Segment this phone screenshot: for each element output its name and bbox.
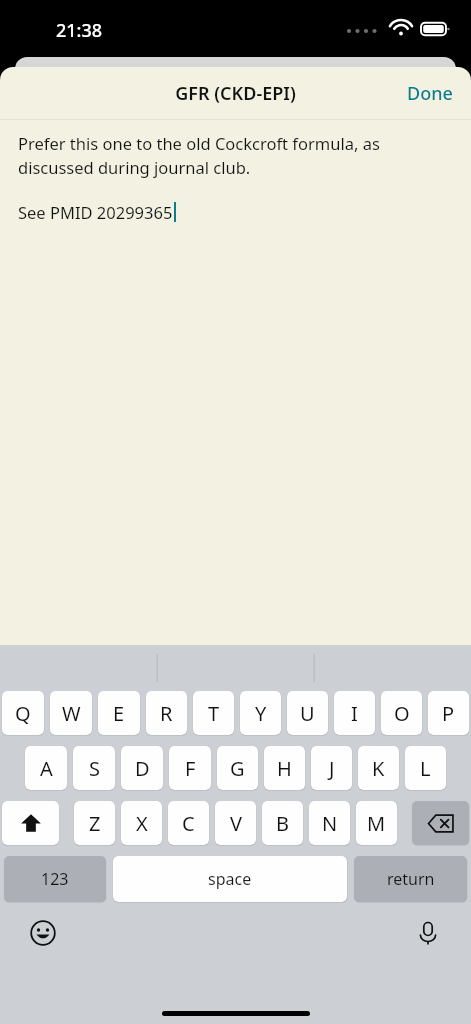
staticText: O: [394, 700, 410, 727]
button[interactable]: 123: [4, 856, 106, 902]
button[interactable]: F: [169, 746, 211, 790]
staticText: F: [185, 755, 196, 782]
staticText: Done: [407, 81, 453, 106]
button[interactable]: V: [215, 801, 256, 845]
button[interactable]: D: [121, 746, 163, 790]
button[interactable]: J: [311, 746, 352, 790]
staticText: N: [322, 810, 338, 837]
button[interactable]: Emoji keyboard: [24, 914, 62, 952]
staticText: S: [89, 755, 100, 782]
button[interactable]: P: [428, 691, 469, 735]
staticText: H: [277, 755, 292, 782]
button[interactable]: B: [262, 801, 303, 845]
staticText: L: [420, 755, 431, 782]
staticText: Q: [15, 700, 31, 727]
button[interactable]: S: [73, 746, 115, 790]
button[interactable]: Backspace: [412, 801, 469, 845]
staticText: V: [230, 810, 242, 837]
staticText: K: [372, 755, 385, 782]
staticText: Prefer this one to the old Cockcroft for…: [18, 132, 453, 179]
button[interactable]: H: [264, 746, 305, 790]
staticText: return: [387, 868, 435, 890]
staticText: I: [351, 700, 358, 727]
button[interactable]: G: [217, 746, 258, 790]
button[interactable]: return: [354, 856, 467, 902]
staticText: E: [113, 700, 125, 727]
button[interactable]: W: [50, 691, 92, 735]
staticText: B: [276, 810, 289, 837]
staticText: 21:38: [56, 18, 103, 43]
button[interactable]: N: [309, 801, 350, 845]
staticText: Z: [89, 810, 101, 837]
button[interactable]: K: [358, 746, 399, 790]
button[interactable]: Y: [240, 691, 281, 735]
staticText: T: [208, 700, 220, 727]
staticText: D: [135, 755, 150, 782]
staticText: C: [182, 810, 195, 837]
button[interactable]: C: [168, 801, 209, 845]
staticText: GFR (CKD-EPI): [175, 81, 296, 106]
button[interactable]: Dictation: [409, 914, 447, 952]
button[interactable]: A: [25, 746, 67, 790]
button[interactable]: I: [334, 691, 375, 735]
button[interactable]: U: [287, 691, 328, 735]
button[interactable]: Shift: [2, 801, 59, 845]
button[interactable]: X: [121, 801, 162, 845]
staticText: R: [160, 700, 173, 727]
staticText: 123: [41, 868, 69, 890]
staticText: X: [136, 810, 148, 837]
button[interactable]: T: [193, 691, 234, 735]
button[interactable]: R: [146, 691, 187, 735]
button[interactable]: space: [113, 856, 347, 902]
staticText: Y: [255, 700, 267, 727]
button[interactable]: Z: [74, 801, 115, 845]
button[interactable]: E: [98, 691, 140, 735]
button[interactable]: Q: [2, 691, 44, 735]
staticText: A: [40, 755, 53, 782]
staticText: G: [230, 755, 245, 782]
staticText: See PMID 20299365: [18, 201, 173, 223]
staticText: J: [329, 755, 335, 782]
staticText: M: [367, 810, 386, 837]
staticText: U: [300, 700, 315, 727]
button[interactable]: O: [381, 691, 422, 735]
staticText: P: [442, 700, 455, 727]
staticText: W: [62, 700, 81, 727]
button[interactable]: L: [405, 746, 446, 790]
button[interactable]: M: [356, 801, 397, 845]
staticText: space: [208, 868, 252, 890]
button[interactable]: Done: [389, 71, 471, 116]
